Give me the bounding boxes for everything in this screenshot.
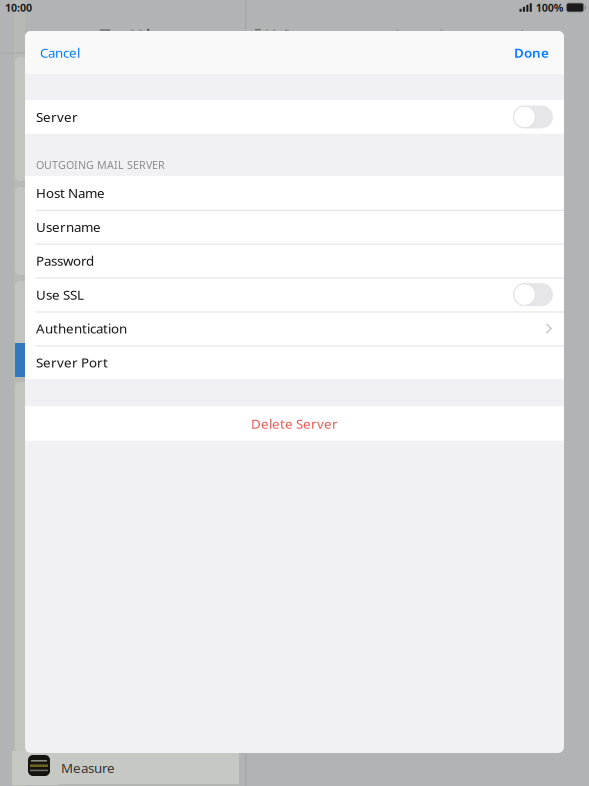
- staticText: Cancel: [40, 44, 80, 61]
- staticText: Password: [36, 252, 94, 269]
- staticText: Measure: [61, 759, 115, 777]
- staticText: Authentication: [36, 320, 127, 337]
- button[interactable]: Password: [25, 244, 564, 278]
- button[interactable]: Username: [25, 210, 564, 244]
- button[interactable]: Server: [25, 100, 564, 134]
- button[interactable]: Use SSL: [25, 278, 564, 311]
- staticText: Username: [36, 218, 101, 236]
- button[interactable]: Delete Server: [25, 406, 564, 441]
- staticText: Server Port: [36, 353, 108, 371]
- staticText: Server: [36, 108, 78, 126]
- button[interactable]: Authentication: [25, 311, 564, 345]
- staticText: 100%: [536, 0, 564, 15]
- staticText: Use SSL: [36, 286, 84, 303]
- button[interactable]: Cancel: [25, 31, 90, 74]
- staticText: Delete Server: [251, 415, 338, 432]
- button[interactable]: Server Port: [25, 345, 564, 379]
- staticText: Host Name: [36, 184, 105, 202]
- button[interactable]: Host Name: [25, 176, 564, 210]
- staticText: Done: [514, 44, 549, 61]
- staticText: OUTGOING MAIL SERVER: [36, 158, 165, 172]
- button[interactable]: Done: [504, 31, 564, 74]
- staticText: 10:00: [5, 0, 32, 15]
